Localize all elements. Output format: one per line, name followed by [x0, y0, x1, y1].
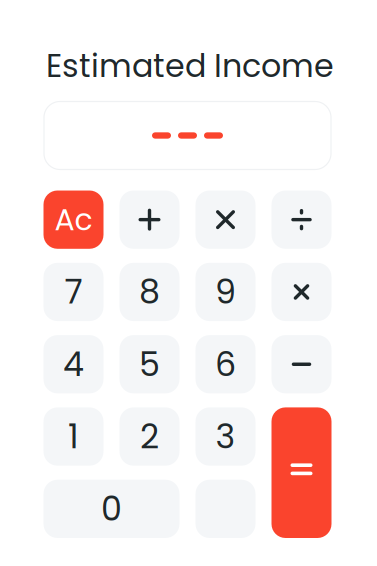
button[interactable]: Add: [119, 190, 179, 249]
button[interactable]: [43, 407, 103, 466]
staticText: 2: [140, 413, 159, 460]
button[interactable]: [195, 263, 255, 321]
button[interactable]: [43, 263, 103, 321]
button[interactable]: [43, 335, 103, 393]
button[interactable]: [195, 335, 255, 393]
staticText: 4: [63, 341, 84, 388]
staticText: 0: [101, 485, 122, 532]
button[interactable]: [119, 263, 179, 321]
button[interactable]: Equals: [271, 407, 331, 538]
button[interactable]: Multiply: [195, 190, 255, 249]
button[interactable]: Divide: [271, 190, 331, 249]
staticText: 3: [215, 413, 235, 460]
button[interactable]: [119, 335, 179, 393]
staticText: 5: [139, 341, 160, 388]
staticText: Estimated Income: [46, 44, 334, 88]
staticText: Ac: [54, 199, 92, 241]
staticText: 6: [215, 341, 236, 388]
button[interactable]: [43, 190, 103, 249]
staticText: 7: [64, 269, 82, 315]
button[interactable]: [195, 407, 255, 466]
staticText: 8: [139, 269, 160, 315]
button[interactable]: [43, 480, 179, 538]
staticText: 1: [68, 413, 79, 460]
button[interactable]: Clear: [271, 263, 331, 321]
button[interactable]: [119, 407, 179, 466]
button[interactable]: Subtract: [271, 335, 331, 393]
staticText: 9: [215, 269, 236, 315]
